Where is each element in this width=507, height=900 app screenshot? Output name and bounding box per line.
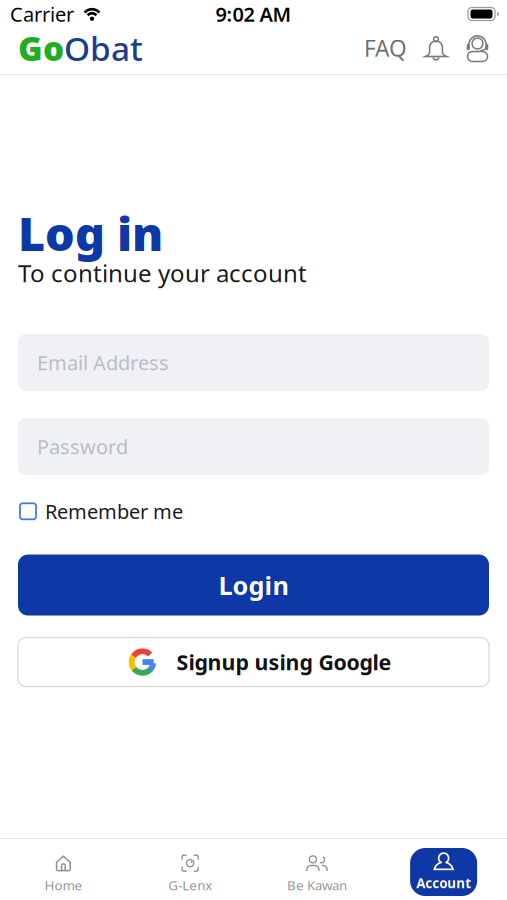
button[interactable]: Password: [18, 418, 489, 475]
staticText: Home: [44, 876, 82, 894]
button[interactable]: Customer Support: [449, 34, 491, 62]
staticText: FAQ: [364, 33, 407, 63]
button[interactable]: Remember me: [18, 498, 183, 525]
button[interactable]: G-Lenx: [127, 852, 254, 892]
button[interactable]: Login: [18, 555, 489, 616]
button[interactable]: FAQ: [364, 33, 407, 63]
staticText: Remember me: [45, 498, 183, 525]
staticText: Obat: [64, 26, 143, 70]
button[interactable]: GoObat Home: [18, 26, 143, 70]
button[interactable]: Account: [410, 848, 477, 896]
staticText: Log in: [18, 202, 163, 264]
button[interactable]: Notifications: [407, 35, 449, 61]
staticText: Go: [18, 26, 64, 70]
button[interactable]: Signup using Google: [18, 638, 489, 687]
staticText: Email Address: [37, 349, 169, 376]
staticText: To continue your account: [18, 257, 307, 289]
staticText: 9:02 AM: [215, 1, 291, 27]
button[interactable]: Be Kawan: [253, 852, 380, 892]
button[interactable]: Email Address: [18, 334, 489, 391]
staticText: Signup using Google: [176, 648, 391, 676]
staticText: Carrier: [10, 1, 74, 27]
staticText: Login: [218, 568, 288, 602]
staticText: G-Lenx: [168, 876, 212, 894]
button[interactable]: Home: [0, 852, 127, 892]
staticText: Account: [416, 874, 471, 892]
staticText: Password: [37, 433, 128, 460]
staticText: Be Kawan: [287, 876, 347, 894]
